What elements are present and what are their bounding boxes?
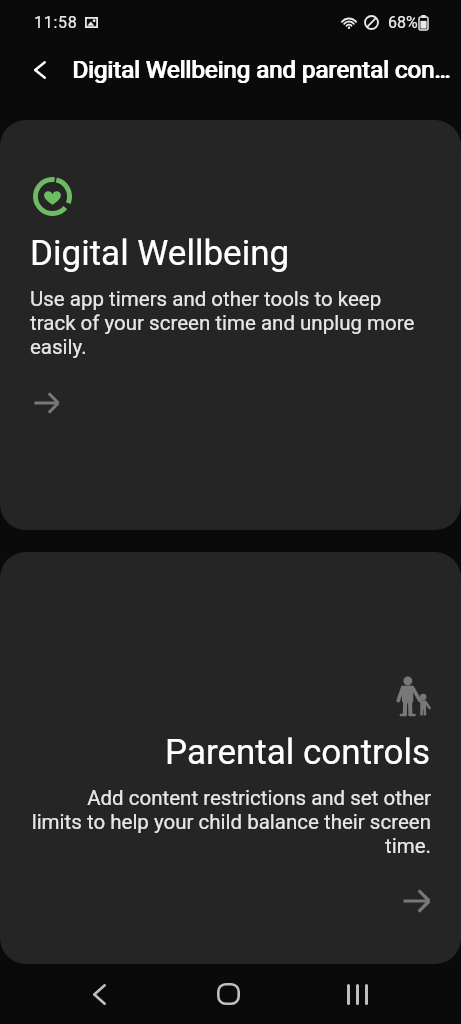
button[interactable]: Recent apps: [311, 964, 403, 1024]
button[interactable]: Parental controls: [0, 552, 461, 964]
staticText: Add content restrictions and set other l…: [30, 786, 431, 858]
button[interactable]: Home: [182, 964, 274, 1024]
button[interactable]: Back: [53, 964, 145, 1024]
staticText: Digital Wellbeing and parental con…: [72, 56, 451, 84]
staticText: Digital Wellbeing and parental con…: [73, 56, 452, 84]
staticText: 11:58: [34, 13, 78, 32]
staticText: Use app timers and other tools to keep t…: [30, 287, 415, 359]
button[interactable]: Digital Wellbeing: [0, 120, 461, 530]
staticText: Parental controls: [165, 732, 431, 773]
staticText: Digital Wellbeing: [30, 233, 290, 274]
button[interactable]: Navigate up: [0, 44, 72, 96]
staticText: 68%: [388, 13, 418, 32]
